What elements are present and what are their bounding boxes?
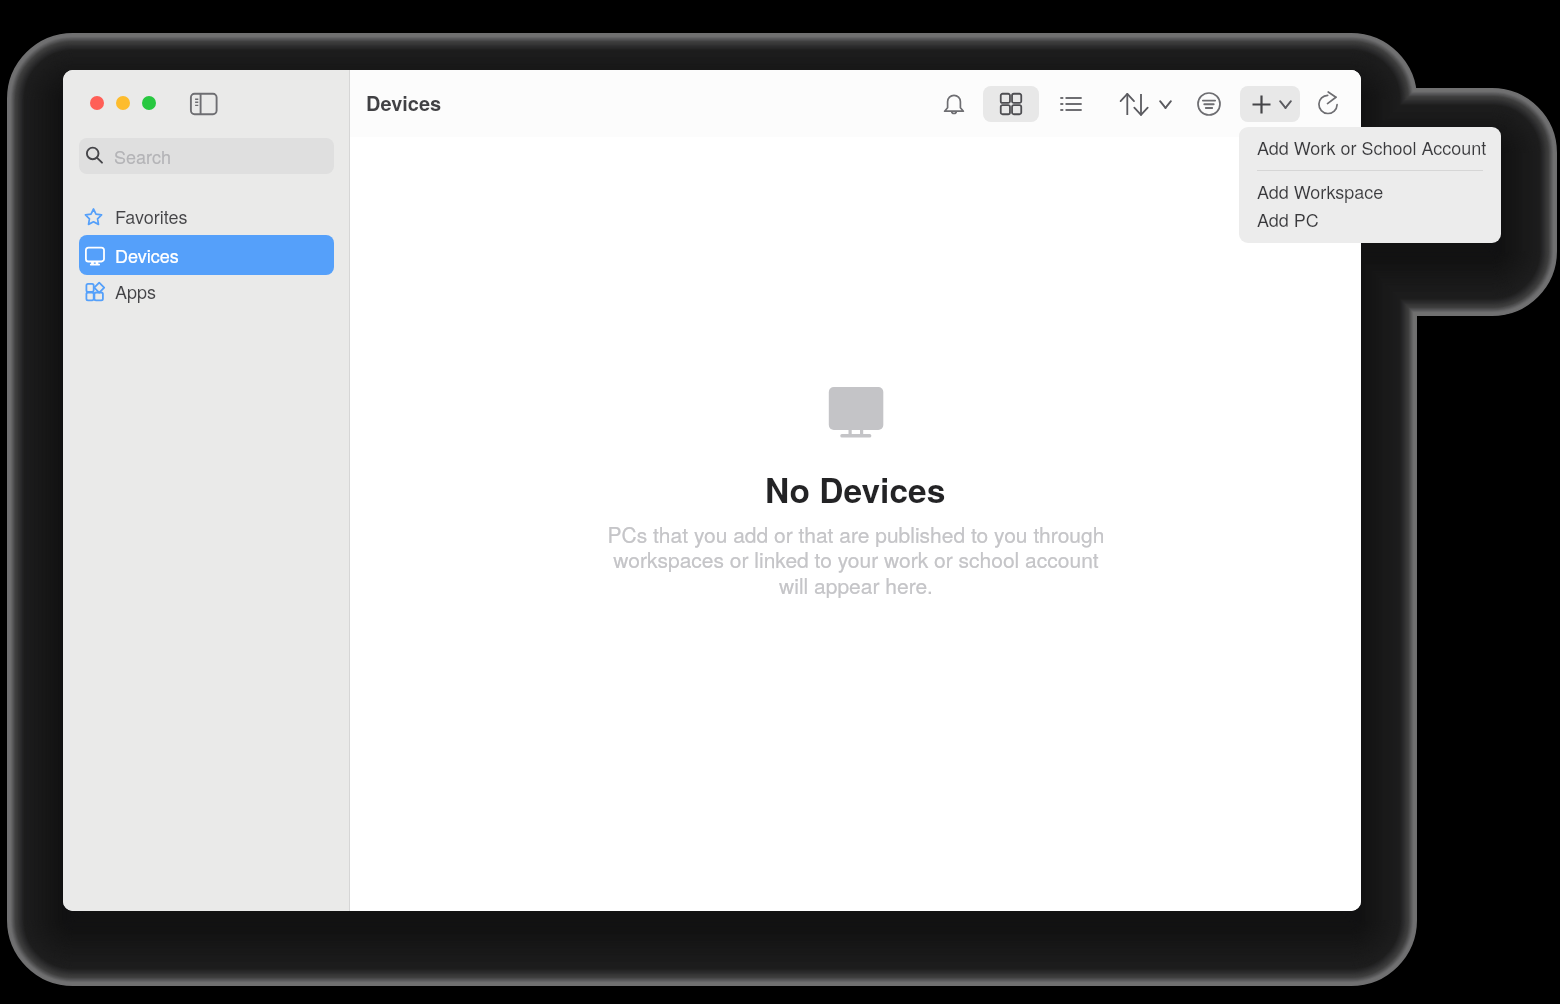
staticText: No Devices xyxy=(765,465,946,513)
button[interactable]: Refresh xyxy=(1306,86,1350,122)
button[interactable]: Favorites xyxy=(79,198,334,234)
button[interactable]: Add PC xyxy=(1239,206,1501,232)
button[interactable]: Minimize xyxy=(116,96,130,110)
button[interactable]: List view xyxy=(1049,86,1093,122)
button[interactable]: Grid view xyxy=(983,86,1039,122)
button[interactable]: Add Workspace xyxy=(1239,178,1501,204)
staticText: PCs that you add or that are published t… xyxy=(576,519,1136,600)
button[interactable]: Filter xyxy=(1187,86,1231,122)
button[interactable]: Add xyxy=(1240,86,1300,122)
button[interactable]: Apps xyxy=(79,273,334,309)
button[interactable]: Toggle Sidebar xyxy=(187,88,217,118)
button[interactable]: Zoom xyxy=(142,96,156,110)
staticText: Favorites xyxy=(115,203,188,229)
staticText: Apps xyxy=(115,278,157,304)
staticText: Devices xyxy=(115,242,179,268)
button[interactable]: Close xyxy=(90,96,104,110)
button[interactable]: Search xyxy=(79,138,334,174)
staticText: Add PC xyxy=(1257,206,1319,232)
button[interactable]: Sort xyxy=(1110,86,1182,122)
button[interactable]: Devices xyxy=(79,235,334,275)
button[interactable]: Notifications xyxy=(932,86,976,122)
staticText: Add Workspace xyxy=(1257,178,1384,204)
button[interactable]: Add Work or School Account xyxy=(1239,134,1501,160)
staticText: Devices xyxy=(366,88,442,117)
staticText: Search xyxy=(114,143,171,169)
staticText: Add Work or School Account xyxy=(1257,134,1487,160)
